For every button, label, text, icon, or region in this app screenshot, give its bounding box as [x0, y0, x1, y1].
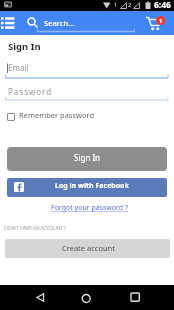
staticText: Password [8, 86, 53, 97]
staticText: 2 [128, 1, 132, 8]
staticText: 6:46 [154, 0, 171, 10]
staticText: DON'T HAVE AN ACCOUNT ? [4, 224, 66, 231]
button[interactable]: Create account [5, 239, 170, 258]
button[interactable]: Forgot your password ? [51, 203, 129, 213]
staticText: Email [8, 62, 29, 73]
button[interactable]: Log in with Facebook [7, 178, 167, 197]
button[interactable]: 1 [144, 13, 168, 35]
staticText: Search... [44, 18, 75, 28]
button[interactable]: Sign In [7, 147, 167, 171]
staticText: Sign In [74, 152, 101, 163]
staticText: Remember password [19, 110, 95, 120]
staticText: Log in with Facebook [55, 181, 129, 191]
staticText: 1 [159, 17, 163, 24]
button[interactable] [28, 285, 52, 310]
staticText: Sign In [8, 40, 41, 53]
button[interactable] [74, 285, 98, 310]
button[interactable] [0, 11, 20, 35]
button[interactable]: Remember password [7, 110, 107, 122]
staticText: Create account [62, 243, 115, 253]
button[interactable] [123, 285, 147, 310]
staticText: 1 [114, 1, 118, 8]
button[interactable]: Search... [24, 11, 136, 35]
button[interactable]: Email [0, 58, 174, 80]
button[interactable]: Password [0, 82, 174, 104]
